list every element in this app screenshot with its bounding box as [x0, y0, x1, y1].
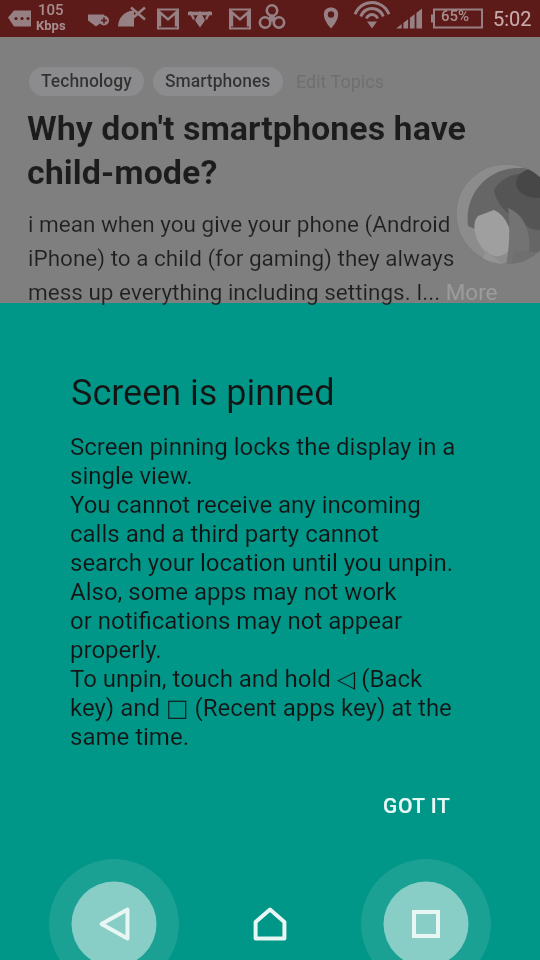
staticText: Why don't smartphones have child-mode?: [27, 108, 466, 192]
staticText: 65%: [441, 7, 470, 25]
button[interactable]: Back: [64, 874, 164, 960]
button[interactable]: Smartphones: [153, 67, 283, 96]
staticText: Smartphones: [165, 71, 271, 92]
staticText: Kbps: [36, 18, 66, 33]
staticText: Technology: [41, 71, 132, 92]
staticText: GOT IT: [383, 794, 451, 819]
button[interactable]: Why don't smartphones have child-mode?: [0, 97, 540, 303]
staticText: i mean when you give your phone (Android…: [28, 211, 498, 305]
button[interactable]: GOT IT: [362, 784, 472, 829]
staticText: 105: [38, 1, 64, 19]
button[interactable]: Technology: [29, 67, 144, 96]
staticText: Edit Topics: [296, 71, 384, 92]
button[interactable]: Edit Topics: [296, 67, 384, 96]
button[interactable]: Recent apps: [376, 874, 476, 960]
staticText: Screen pinning locks the display in a si…: [70, 433, 456, 751]
staticText: Screen is pinned: [71, 372, 335, 414]
button[interactable]: Home: [220, 874, 320, 960]
staticText: 5:02: [493, 7, 532, 30]
